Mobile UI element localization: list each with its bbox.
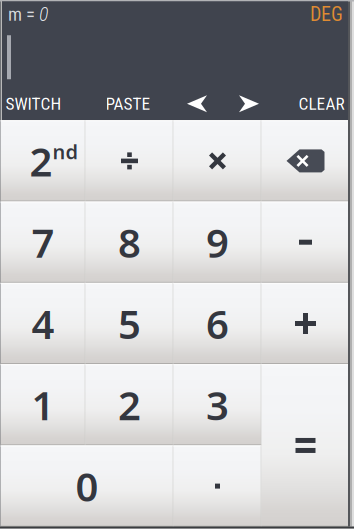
button[interactable]: 2 [85,364,173,445]
staticText: 7 [31,216,54,269]
staticText: 1 [31,378,54,431]
button[interactable]: 9 [173,202,261,283]
button[interactable]: Move cursor right [203,87,295,120]
button[interactable] [261,283,349,364]
staticText: SWITCH [5,94,61,114]
staticText: 3 [206,378,229,431]
staticText: 2 [29,134,52,187]
button[interactable]: 0 [0,445,173,527]
button[interactable]: PASTE [65,87,191,120]
button[interactable] [261,120,349,201]
staticText: CLEAR [298,94,344,114]
staticText: 9 [206,216,229,269]
button[interactable] [173,445,261,527]
button[interactable] [261,364,349,527]
staticText: DEG [310,2,343,26]
button[interactable]: 2 [0,120,85,201]
button[interactable]: 6 [173,283,261,364]
staticText: 2 [118,378,141,431]
button[interactable] [261,202,349,283]
staticText: 0 [39,2,48,26]
button[interactable]: 3 [173,364,261,445]
staticText: 4 [31,297,54,350]
button[interactable]: 8 [85,202,173,283]
staticText: 5 [118,297,141,350]
staticText: PASTE [105,94,150,114]
button[interactable]: Move cursor left [191,87,203,120]
button[interactable]: 4 [0,283,85,364]
button[interactable] [173,120,261,201]
staticText: nd [52,138,78,165]
button[interactable]: CLEAR [295,87,348,120]
button[interactable]: DEG [310,2,343,26]
button[interactable] [85,120,173,201]
button[interactable]: 5 [85,283,173,364]
button[interactable]: 7 [0,202,85,283]
button[interactable]: 1 [0,364,85,445]
staticText: m = [8,3,35,25]
button[interactable]: SWITCH [2,87,65,120]
staticText: 0 [75,459,98,513]
staticText: 6 [206,297,229,350]
staticText: 8 [118,216,141,269]
